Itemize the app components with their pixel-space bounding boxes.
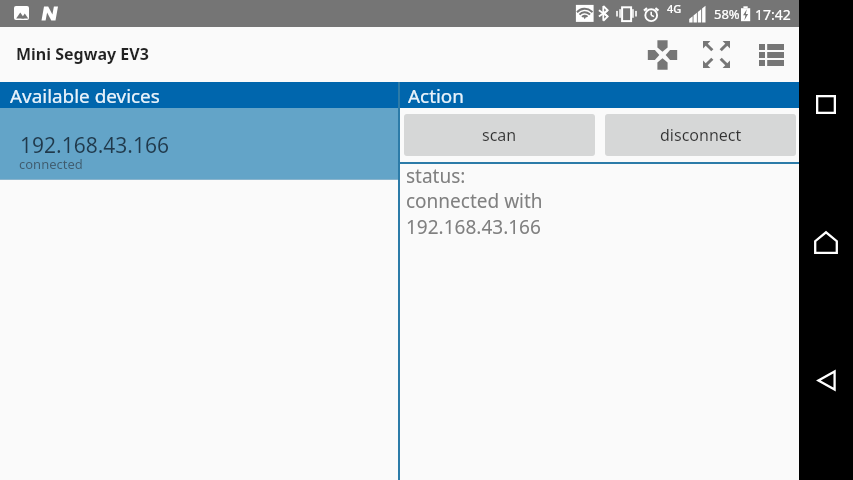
staticText: connected with	[406, 188, 543, 214]
staticText: 58%	[714, 5, 740, 23]
button[interactable]: Recent apps	[799, 80, 853, 128]
staticText: Action	[408, 83, 464, 109]
staticText: 192.168.43.166	[406, 214, 541, 240]
button[interactable]: scan	[404, 114, 595, 156]
staticText: 17:42	[755, 5, 791, 24]
staticText: scan	[482, 124, 517, 146]
button[interactable]: disconnect	[605, 114, 796, 156]
button[interactable]: Fullscreen	[700, 38, 733, 71]
button[interactable]: Back	[799, 356, 853, 404]
staticText: disconnect	[660, 124, 742, 146]
button[interactable]: Direction pad	[646, 38, 679, 71]
staticText: 192.168.43.166	[20, 131, 170, 160]
staticText: 4G	[667, 1, 682, 16]
staticText: Mini Segway EV3	[16, 43, 149, 65]
staticText: status:	[406, 163, 466, 189]
button[interactable]: 192.168.43.166	[0, 108, 398, 180]
staticText: connected	[19, 155, 83, 173]
button[interactable]: List	[755, 38, 788, 71]
staticText: Available devices	[10, 83, 160, 109]
button[interactable]: Home	[799, 218, 853, 266]
